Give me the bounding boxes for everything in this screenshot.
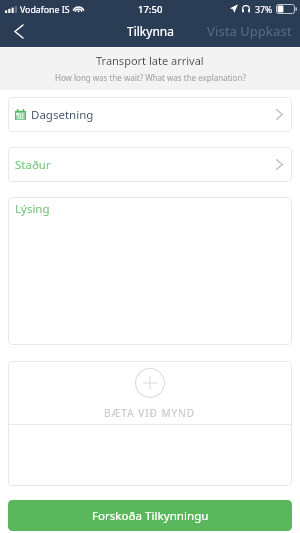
staticText: 37% [255,4,273,16]
staticText: BÆTA VIÐ MYND [104,406,196,420]
button[interactable]: Dagsetning [8,97,292,132]
staticText: 17:50 [138,3,163,16]
button[interactable]: Add photo [8,361,292,486]
staticText: Vodafone IS [20,4,70,16]
button[interactable]: Add photo [8,361,292,424]
button[interactable]: Staður [8,147,292,182]
button[interactable]: Forskoða Tilkynningu [8,500,292,531]
button[interactable]: Back [0,19,38,47]
staticText: Lýsing [15,201,50,217]
staticText: Transport late arrival [96,53,204,68]
button[interactable]: Vista Uppkast [207,24,292,42]
staticText: Staður [15,157,51,173]
staticText: How long was the wait? What was the expl… [55,72,246,83]
staticText: Vista Uppkast [207,22,292,40]
staticText: Tilkynna [127,23,174,39]
staticText: Forskoða Tilkynningu [92,508,209,524]
button[interactable]: Lýsing [8,197,292,345]
staticText: Dagsetning [31,107,94,123]
